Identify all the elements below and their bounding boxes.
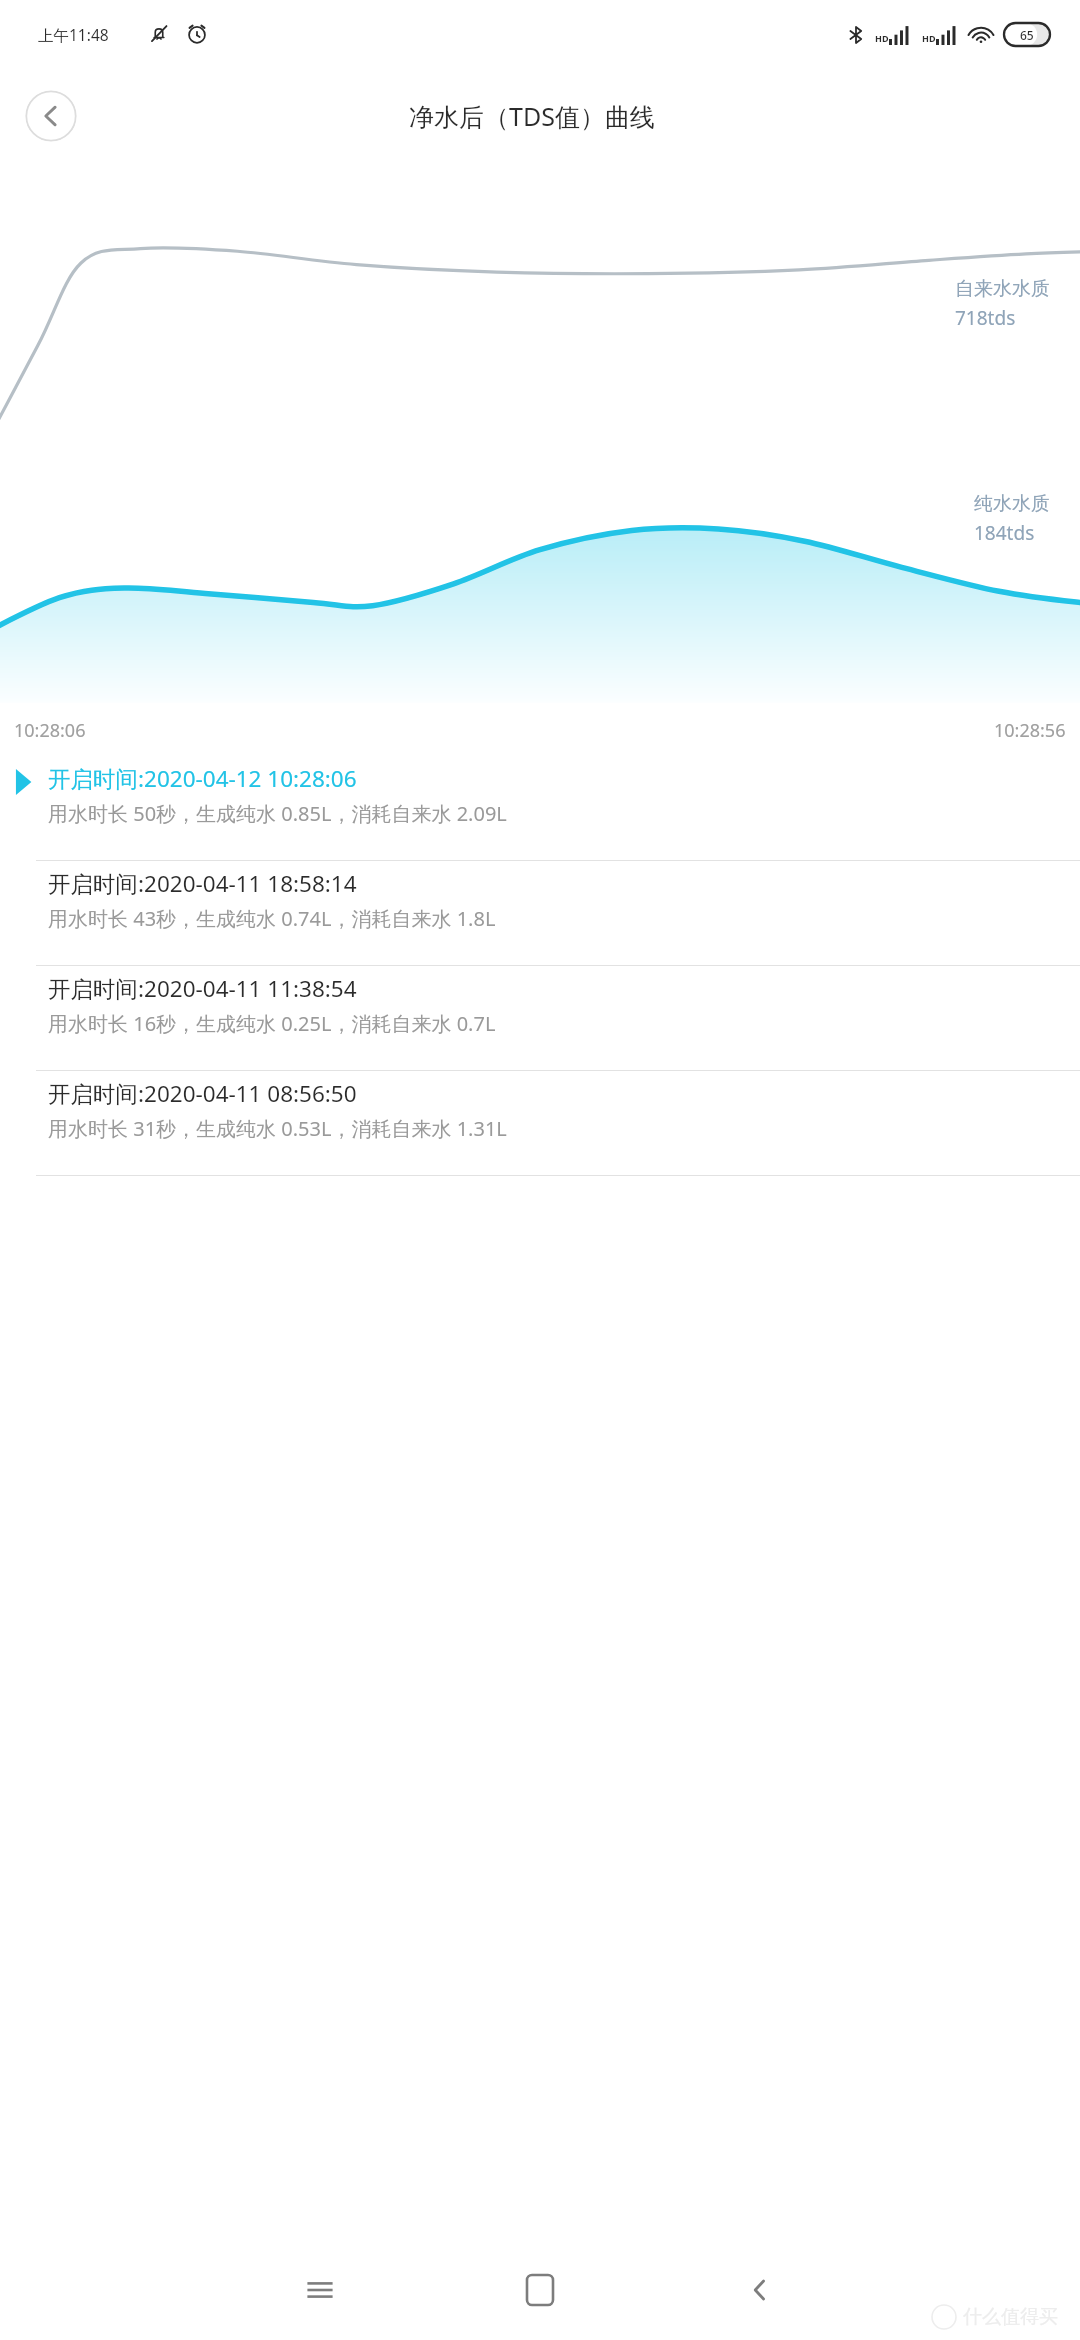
button[interactable]: 开启时间:2020-04-12 10:28:06 [0,756,1080,861]
staticText: 净水后（TDS值）曲线 [409,99,655,133]
staticText: 什么值得买 [963,2305,1058,2329]
staticText: 184tds [974,520,1035,546]
button[interactable]: Home [430,2240,650,2340]
staticText: 自来水水质 [955,277,1050,301]
button[interactable]: 开启时间:2020-04-11 08:56:50 [0,1071,1080,1176]
staticText: 开启时间:2020-04-11 18:58:14 [48,868,357,899]
staticText: 用水时长 43秒，生成纯水 0.74L，消耗自来水 1.8L [48,905,496,932]
staticText: 开启时间:2020-04-11 11:38:54 [48,973,357,1004]
staticText: 用水时长 50秒，生成纯水 0.85L，消耗自来水 2.09L [48,800,507,827]
button[interactable]: 开启时间:2020-04-11 18:58:14 [0,861,1080,966]
staticText: 上午11:48 [38,24,109,45]
button[interactable]: Recents [210,2240,430,2340]
button[interactable]: 开启时间:2020-04-11 11:38:54 [0,966,1080,1071]
staticText: HD [875,32,889,44]
staticText: 65 [1020,27,1034,43]
staticText: 用水时长 16秒，生成纯水 0.25L，消耗自来水 0.7L [48,1010,496,1037]
button[interactable]: 返回 [25,90,77,142]
staticText: 10:28:56 [994,718,1066,743]
staticText: 718tds [955,305,1016,331]
staticText: HD [922,32,936,44]
staticText: 纯水水质 [974,492,1050,516]
staticText: 开启时间:2020-04-12 10:28:06 [48,763,357,794]
staticText: 用水时长 31秒，生成纯水 0.53L，消耗自来水 1.31L [48,1115,507,1142]
staticText: 10:28:06 [14,718,86,743]
staticText: 开启时间:2020-04-11 08:56:50 [48,1078,357,1109]
button[interactable]: Back [650,2240,870,2340]
